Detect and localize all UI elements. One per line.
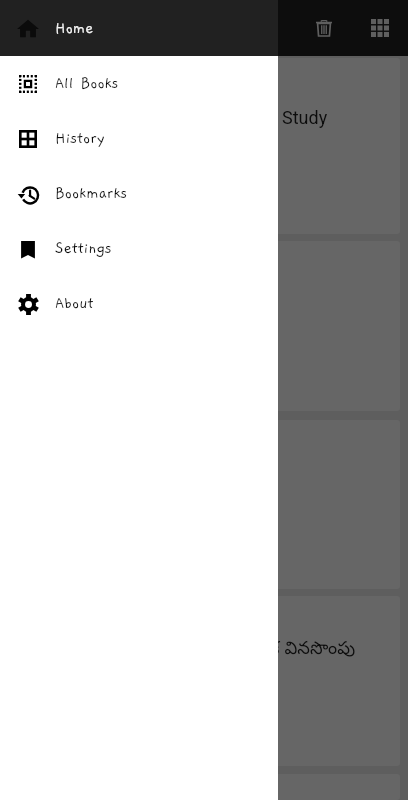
staticText: Home (55, 20, 94, 37)
button[interactable]: All Books (0, 56, 278, 111)
staticText: History (55, 130, 105, 147)
button[interactable]: Study (8, 58, 400, 234)
button[interactable]: Settings (0, 221, 278, 276)
button[interactable]: History (0, 111, 278, 166)
button[interactable]: About (0, 276, 278, 331)
staticText: All Books (55, 75, 119, 92)
staticText: Bookmarks (55, 185, 128, 202)
button[interactable] (8, 420, 400, 589)
button[interactable]: Home (0, 0, 278, 56)
button[interactable] (8, 774, 400, 800)
button[interactable] (8, 241, 400, 411)
button[interactable]: Delete (300, 4, 348, 52)
staticText: Study (282, 107, 328, 128)
staticText: క వినసొంపు (270, 638, 356, 662)
button[interactable]: Grid view (356, 4, 404, 52)
staticText: Settings (55, 240, 112, 257)
button[interactable]: Bookmarks (0, 166, 278, 221)
button[interactable]: క వినసొంపు (8, 596, 400, 766)
staticText: About (55, 295, 94, 312)
